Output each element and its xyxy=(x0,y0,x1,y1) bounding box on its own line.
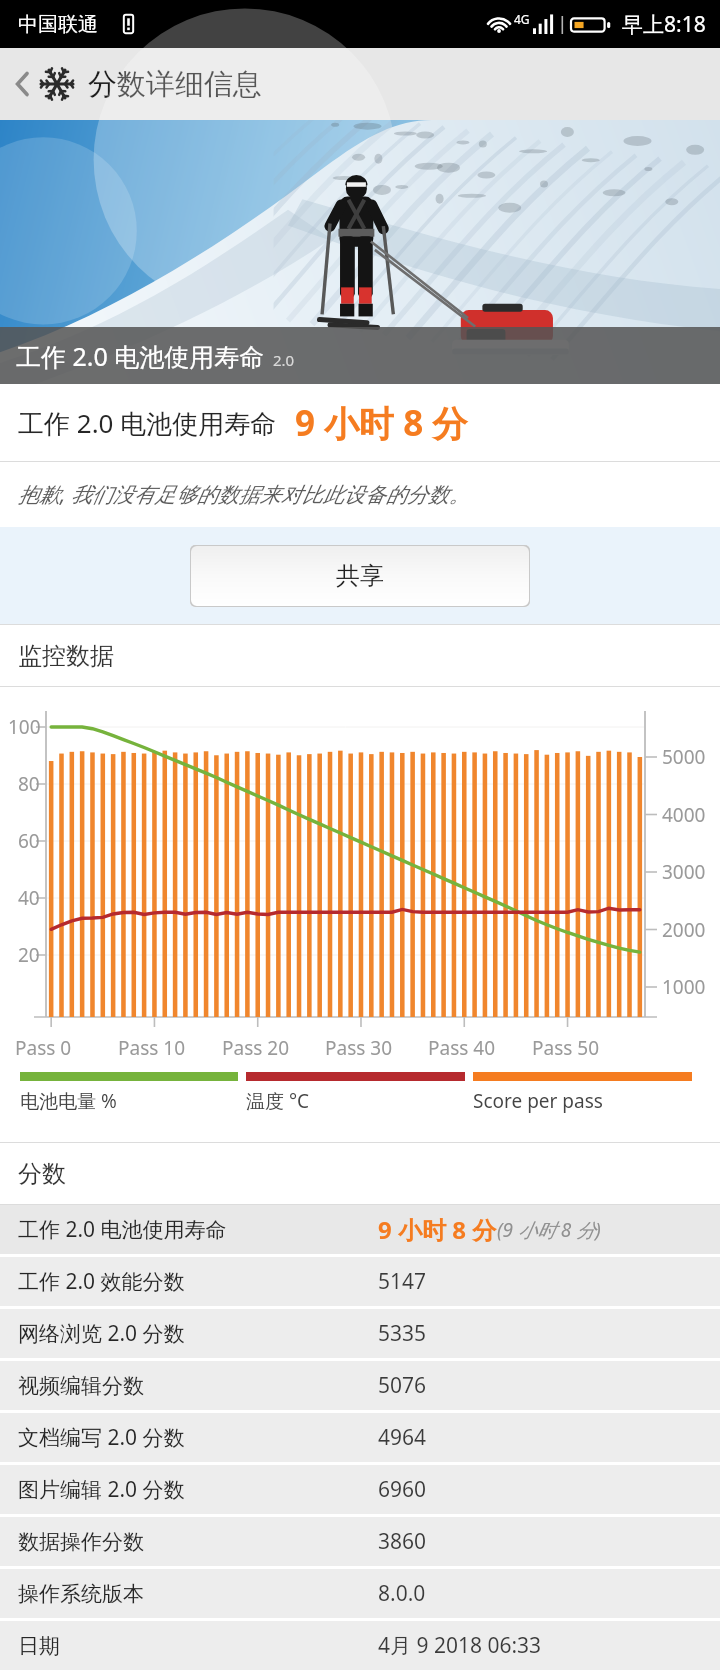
button[interactable]: Back xyxy=(0,48,720,120)
staticText: 操作系统版本 xyxy=(18,1581,144,1607)
staticText: 3000 xyxy=(662,859,706,885)
button[interactable]: 视频编辑分数 xyxy=(0,1361,720,1410)
staticText: 抱歉, 我们没有足够的数据来对比此设备的分数。 xyxy=(18,480,470,509)
staticText: 文档编写 2.0 分数 xyxy=(18,1423,185,1452)
button[interactable]: 文档编写 2.0 分数 xyxy=(0,1413,720,1462)
staticText: 工作 2.0 电池使用寿命 xyxy=(16,339,265,373)
staticText: 2000 xyxy=(662,917,706,943)
staticText: 5335 xyxy=(378,1319,427,1348)
button[interactable]: 日期 xyxy=(0,1621,720,1670)
staticText: 分数详细信息 xyxy=(88,66,262,103)
staticText: 数据操作分数 xyxy=(18,1529,144,1555)
staticText: 20 xyxy=(18,942,40,968)
staticText: 中国联通 xyxy=(18,12,98,37)
staticText: Pass 50 xyxy=(532,1035,600,1061)
button[interactable]: 数据操作分数 xyxy=(0,1517,720,1566)
button[interactable]: 操作系统版本 xyxy=(0,1569,720,1618)
button[interactable]: 共享 xyxy=(190,545,530,607)
staticText: Score per pass xyxy=(473,1088,603,1114)
other: Back xyxy=(8,62,36,106)
staticText: 工作 2.0 电池使用寿命 xyxy=(18,1215,227,1244)
staticText: (9 小时 8 分) xyxy=(497,1217,601,1243)
staticText: 监控数据 xyxy=(18,641,114,671)
staticText: 60 xyxy=(18,828,40,854)
staticText: 80 xyxy=(18,771,40,797)
staticText: Pass 30 xyxy=(325,1035,393,1061)
staticText: 8.0.0 xyxy=(378,1579,426,1608)
staticText: Pass 0 xyxy=(15,1035,72,1061)
staticText: 图片编辑 2.0 分数 xyxy=(18,1475,185,1504)
staticText: 100 xyxy=(8,714,41,740)
staticText: 5147 xyxy=(378,1267,427,1296)
button[interactable]: 工作 2.0 效能分数 xyxy=(0,1257,720,1306)
staticText: 共享 xyxy=(336,561,384,591)
staticText: 3860 xyxy=(378,1527,427,1556)
staticText: 日期 xyxy=(18,1633,60,1659)
staticText: 早上8:18 xyxy=(622,10,706,39)
staticText: 6960 xyxy=(378,1475,427,1504)
staticText: 工作 2.0 电池使用寿命 xyxy=(18,405,277,441)
staticText: 分数 xyxy=(18,1159,66,1189)
staticText: 9 小时 8 分 xyxy=(378,1213,497,1246)
staticText: 1000 xyxy=(662,974,706,1000)
staticText: 电池电量 % xyxy=(20,1088,117,1114)
staticText: Pass 10 xyxy=(118,1035,186,1061)
staticText: 5000 xyxy=(662,744,706,770)
staticText: 网络浏览 2.0 分数 xyxy=(18,1319,185,1348)
staticText: 4964 xyxy=(378,1423,427,1452)
staticText: 4月 9 2018 06:33 xyxy=(378,1631,542,1660)
staticText: 4G xyxy=(514,11,530,27)
staticText: 5076 xyxy=(378,1371,427,1400)
staticText: 温度 °C xyxy=(246,1088,310,1114)
staticText: Pass 20 xyxy=(222,1035,290,1061)
staticText: Pass 40 xyxy=(428,1035,496,1061)
staticText: 40 xyxy=(18,885,40,911)
button[interactable]: 网络浏览 2.0 分数 xyxy=(0,1309,720,1358)
staticText: 视频编辑分数 xyxy=(18,1373,144,1399)
staticText: 9 小时 8 分 xyxy=(295,399,468,447)
button[interactable]: 工作 2.0 电池使用寿命 xyxy=(0,1205,720,1254)
staticText: 工作 2.0 效能分数 xyxy=(18,1267,185,1296)
button[interactable]: 图片编辑 2.0 分数 xyxy=(0,1465,720,1514)
staticText: 2.0 xyxy=(273,350,295,370)
staticText: 4000 xyxy=(662,802,706,828)
